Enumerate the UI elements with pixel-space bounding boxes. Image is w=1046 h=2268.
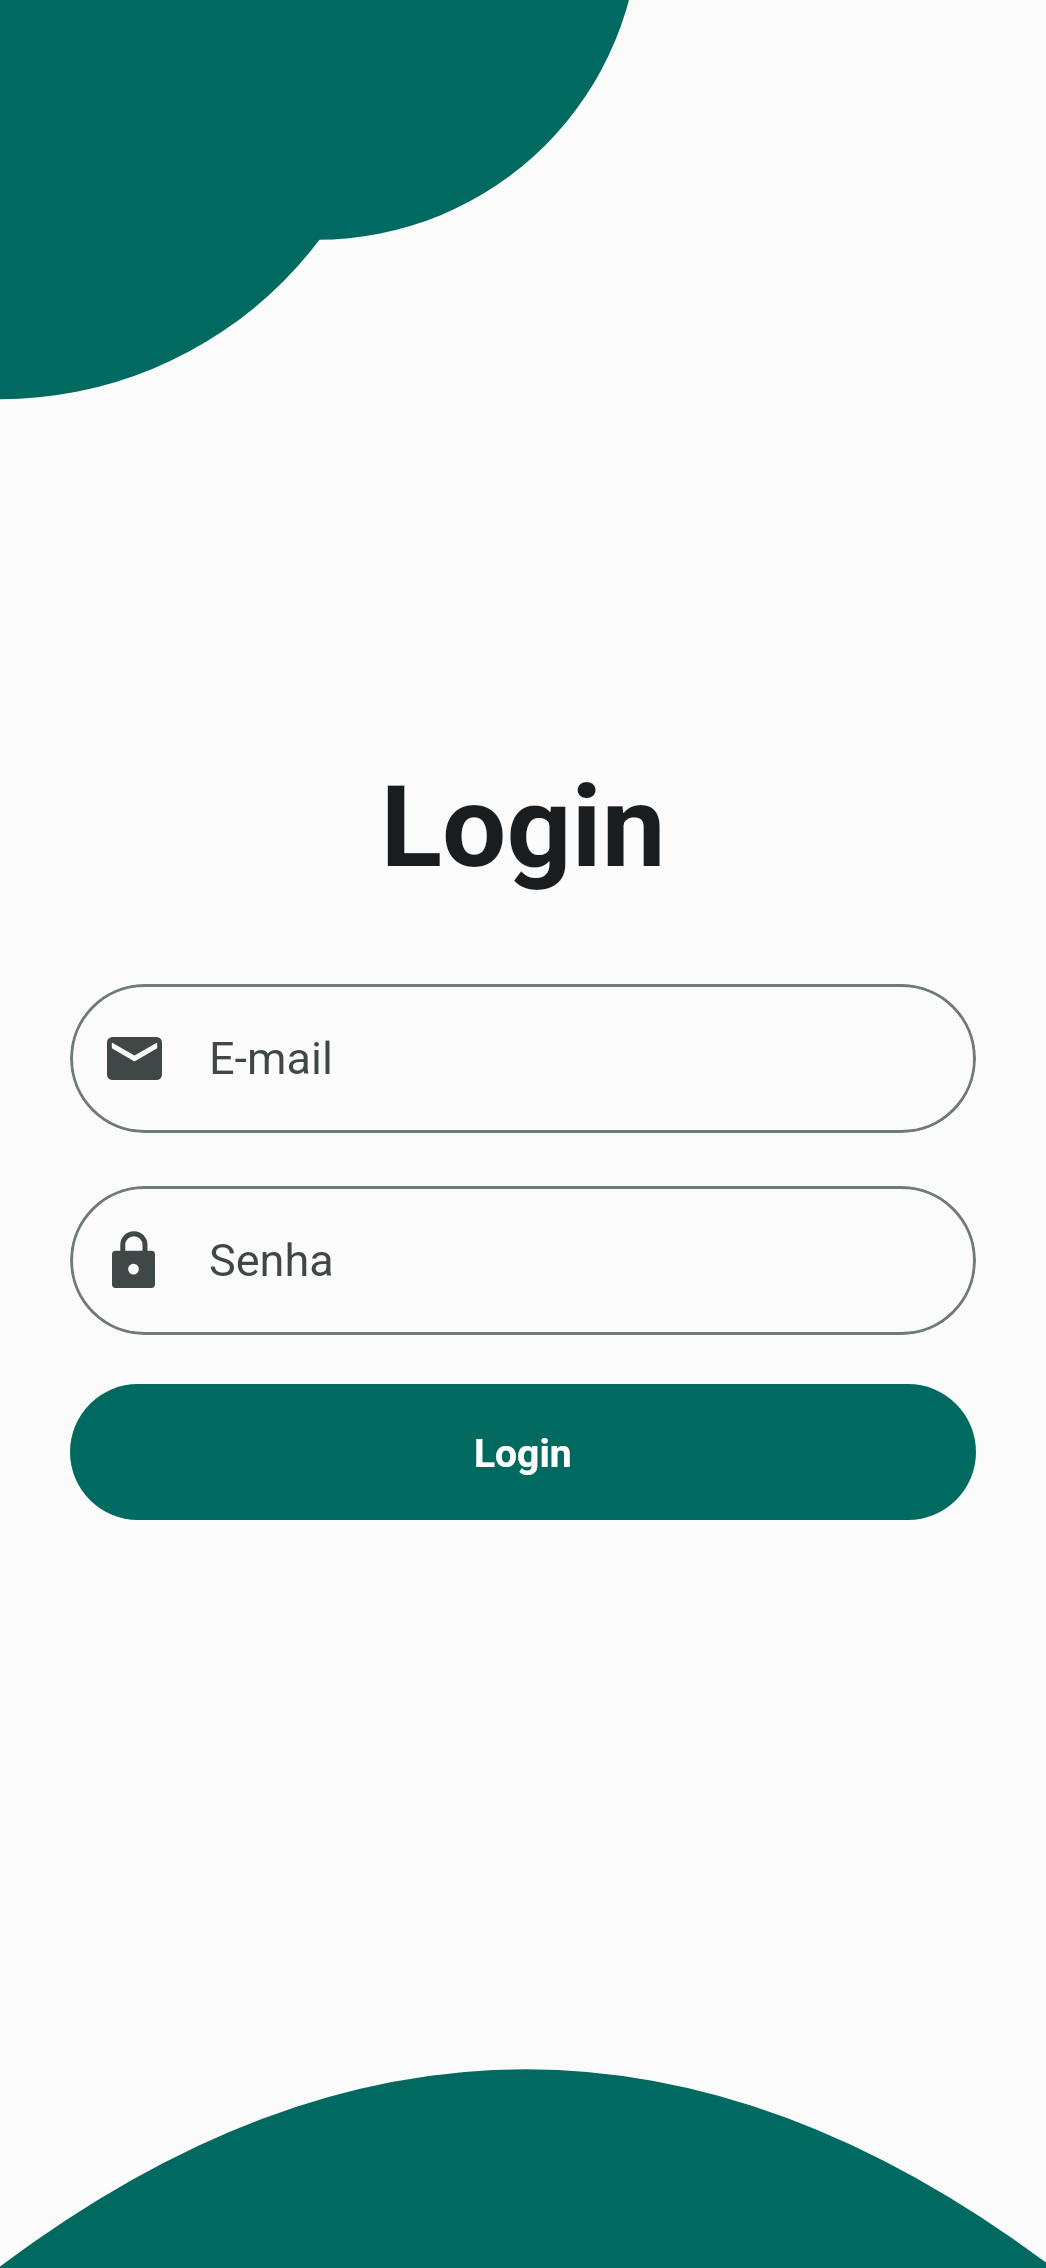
staticText: Login [0, 760, 1046, 894]
other: E-mail [107, 1037, 162, 1080]
staticText: Login [474, 1431, 572, 1477]
button[interactable]: Login [70, 1384, 976, 1520]
button[interactable]: Senha [70, 1186, 976, 1335]
other: Senha [112, 1231, 155, 1288]
staticText: E-mail [209, 1032, 333, 1085]
staticText: Senha [209, 1234, 334, 1287]
button[interactable]: E-mail [70, 984, 976, 1133]
